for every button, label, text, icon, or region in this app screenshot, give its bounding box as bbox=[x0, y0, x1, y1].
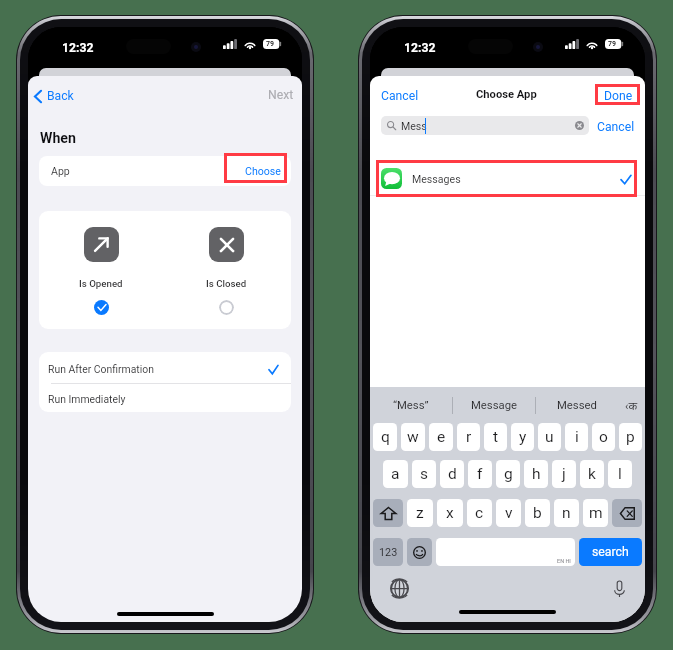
staticText: Next bbox=[268, 88, 294, 102]
staticText: search bbox=[592, 545, 629, 559]
staticText: 123 bbox=[379, 546, 398, 559]
button[interactable]: k bbox=[580, 460, 604, 488]
button[interactable]: Cancel bbox=[379, 87, 421, 105]
button[interactable]: m bbox=[583, 499, 608, 527]
staticText: Messed bbox=[557, 399, 597, 412]
staticText: Is Opened bbox=[79, 278, 123, 289]
staticText: Run Immediately bbox=[48, 393, 126, 405]
staticText: c bbox=[475, 504, 484, 522]
button[interactable]: search bbox=[579, 538, 642, 566]
button[interactable]: c bbox=[467, 499, 492, 527]
staticText: Done bbox=[604, 89, 633, 103]
staticText: k bbox=[588, 465, 596, 483]
button[interactable]: Messages bbox=[370, 162, 645, 195]
staticText: m bbox=[589, 504, 603, 522]
staticText: q bbox=[381, 428, 390, 446]
staticText: ‹क bbox=[625, 398, 638, 413]
button[interactable]: Run Immediately bbox=[39, 384, 291, 412]
button[interactable]: w bbox=[401, 423, 425, 451]
staticText: 79 bbox=[608, 40, 617, 48]
button[interactable]: p bbox=[619, 423, 642, 451]
button[interactable]: q bbox=[373, 423, 397, 451]
staticText: v bbox=[505, 504, 513, 522]
staticText: Back bbox=[47, 89, 74, 103]
other: Dictate bbox=[614, 581, 625, 597]
button[interactable]: h bbox=[524, 460, 548, 488]
staticText: n bbox=[562, 504, 571, 522]
staticText: i bbox=[575, 428, 579, 446]
staticText: Message bbox=[471, 399, 517, 412]
button[interactable]: y bbox=[511, 423, 534, 451]
button[interactable]: z bbox=[407, 499, 433, 527]
staticText: x bbox=[446, 504, 454, 522]
button[interactable]: s bbox=[412, 460, 436, 488]
button[interactable]: f bbox=[468, 460, 492, 488]
button[interactable]: j bbox=[552, 460, 576, 488]
button[interactable]: i bbox=[565, 423, 588, 451]
button[interactable]: u bbox=[538, 423, 561, 451]
staticText: Cancel bbox=[597, 120, 635, 134]
staticText: 12:32 bbox=[62, 41, 94, 55]
staticText: w bbox=[407, 428, 419, 446]
staticText: h bbox=[532, 465, 541, 483]
staticText: a bbox=[391, 465, 400, 483]
staticText: j bbox=[562, 465, 566, 483]
button[interactable]: 123 bbox=[373, 538, 403, 566]
button[interactable]: Is Opened bbox=[79, 227, 123, 315]
button[interactable]: Done bbox=[602, 87, 635, 105]
button[interactable]: Back bbox=[32, 85, 76, 107]
staticText: t bbox=[493, 428, 499, 446]
staticText: g bbox=[504, 465, 513, 483]
staticText: s bbox=[420, 465, 428, 483]
staticText: f bbox=[477, 465, 483, 483]
staticText: 79 bbox=[266, 40, 275, 48]
button[interactable]: x bbox=[437, 499, 463, 527]
button[interactable]: Next bbox=[266, 86, 296, 104]
staticText: App bbox=[51, 165, 70, 177]
button[interactable]: g bbox=[496, 460, 520, 488]
button[interactable]: d bbox=[440, 460, 464, 488]
staticText: b bbox=[533, 504, 542, 522]
staticText: Choose App bbox=[476, 88, 537, 101]
button[interactable]: a bbox=[383, 460, 408, 488]
staticText: 12:32 bbox=[404, 41, 436, 55]
staticText: r bbox=[466, 428, 472, 446]
staticText: e bbox=[437, 428, 446, 446]
staticText: Choose bbox=[245, 165, 281, 177]
button[interactable]: r bbox=[457, 423, 480, 451]
button[interactable]: t bbox=[484, 423, 507, 451]
button[interactable]: o bbox=[592, 423, 615, 451]
button[interactable]: Delete bbox=[612, 499, 642, 527]
button[interactable]: Is Closed bbox=[206, 227, 247, 315]
button[interactable]: n bbox=[554, 499, 579, 527]
button[interactable]: Mess bbox=[381, 116, 589, 135]
other: Change keyboard bbox=[390, 579, 409, 598]
staticText: o bbox=[599, 428, 608, 446]
staticText: y bbox=[519, 428, 527, 446]
staticText: u bbox=[545, 428, 554, 446]
button[interactable]: Choose bbox=[235, 158, 291, 184]
staticText: “Mess” bbox=[393, 399, 429, 412]
button[interactable]: Shift bbox=[373, 499, 403, 527]
staticText: l bbox=[618, 465, 622, 483]
button[interactable]: b bbox=[525, 499, 550, 527]
staticText: Messages bbox=[412, 173, 461, 185]
staticText: Is Closed bbox=[206, 278, 247, 289]
staticText: EN HI bbox=[557, 558, 571, 564]
button[interactable]: v bbox=[496, 499, 521, 527]
button[interactable]: Cancel bbox=[595, 118, 637, 136]
button[interactable]: Run After Confirmation bbox=[39, 352, 291, 383]
staticText: p bbox=[626, 428, 635, 446]
button[interactable]: Emoji bbox=[407, 538, 432, 566]
staticText: z bbox=[416, 504, 424, 522]
staticText: Run After Confirmation bbox=[48, 363, 154, 375]
button[interactable]: e bbox=[429, 423, 453, 451]
staticText: d bbox=[448, 465, 457, 483]
staticText: Mess bbox=[401, 120, 427, 132]
staticText: When bbox=[40, 130, 76, 147]
button[interactable]: EN HI bbox=[436, 538, 575, 566]
button[interactable]: l bbox=[608, 460, 632, 488]
staticText: Cancel bbox=[381, 89, 419, 103]
